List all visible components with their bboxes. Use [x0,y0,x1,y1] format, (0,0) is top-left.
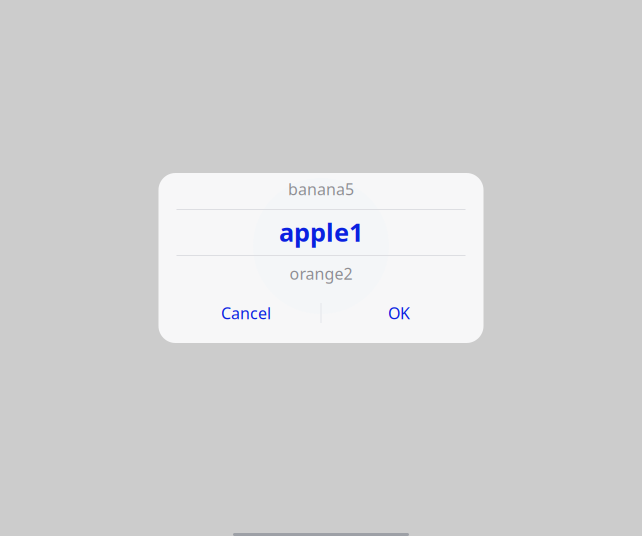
staticText: banana5 [288,178,354,200]
staticText: Cancel [221,302,271,324]
button[interactable]: apple1 [158,209,483,255]
button[interactable]: Cancel [169,293,322,333]
button[interactable]: OK [322,293,475,333]
staticText: OK [388,302,410,324]
staticText: orange2 [289,263,352,284]
button[interactable]: banana5 [158,174,483,204]
button[interactable]: orange2 [158,258,483,288]
staticText: apple1 [279,215,363,249]
